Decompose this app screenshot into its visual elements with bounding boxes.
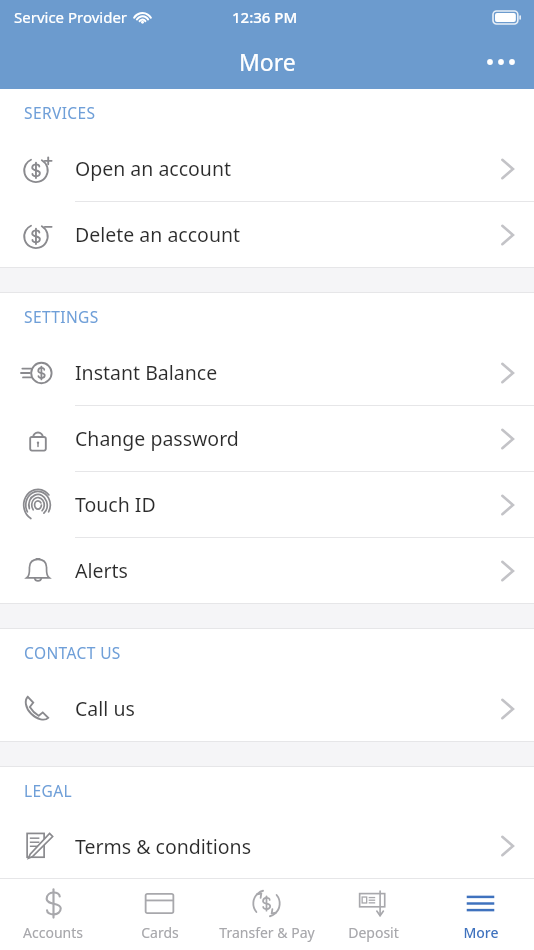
button[interactable]: Terms & conditions (0, 814, 534, 878)
staticText: 12:36 PM (232, 7, 298, 27)
button[interactable]: Open an account (0, 136, 534, 202)
staticText: Delete an account (75, 221, 480, 248)
staticText: More (463, 923, 499, 942)
staticText: SERVICES (24, 102, 96, 123)
button[interactable]: Delete an account (0, 202, 534, 267)
staticText: Deposit (348, 923, 399, 942)
staticText: SETTINGS (24, 306, 99, 327)
staticText: Terms & conditions (75, 833, 480, 860)
button[interactable]: Accounts (0, 879, 106, 950)
staticText: Change password (75, 425, 480, 452)
staticText: LEGAL (24, 780, 73, 801)
button[interactable]: Cards (106, 879, 213, 950)
staticText: Service Provider (14, 7, 128, 27)
button[interactable]: Instant Balance (0, 340, 534, 406)
staticText: CONTACT US (24, 642, 121, 663)
staticText: More (239, 46, 296, 77)
button[interactable]: Transfer & Pay (213, 879, 320, 950)
button[interactable]: Call us (0, 676, 534, 741)
staticText: Cards (141, 923, 179, 942)
staticText: Accounts (23, 923, 83, 942)
button[interactable]: Deposit (320, 879, 427, 950)
staticText: Transfer & Pay (219, 923, 315, 942)
button[interactable]: More options (474, 35, 528, 89)
button[interactable]: Change password (0, 406, 534, 472)
staticText: Open an account (75, 155, 480, 182)
button[interactable]: Alerts (0, 538, 534, 603)
staticText: Touch ID (75, 491, 480, 518)
staticText: Alerts (75, 557, 480, 584)
staticText: Call us (75, 695, 480, 722)
staticText: Instant Balance (75, 359, 480, 386)
button[interactable]: Touch ID (0, 472, 534, 538)
button[interactable]: More (427, 879, 534, 950)
